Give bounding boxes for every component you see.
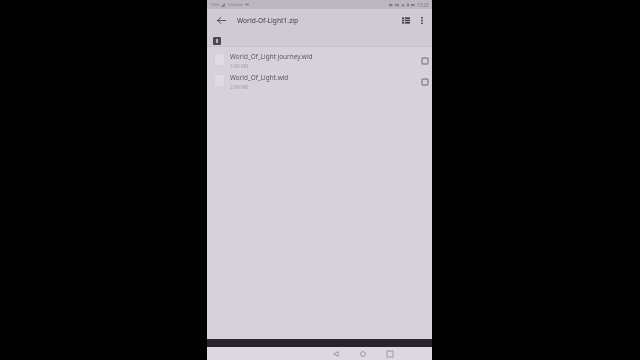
button[interactable]: More options <box>414 9 430 31</box>
staticText: World_Of_Light journey.wld <box>230 52 313 61</box>
staticText: World-Of-Light1.zip <box>237 16 397 25</box>
button[interactable]: Root folder <box>213 37 221 45</box>
button[interactable]: Recent apps <box>377 347 402 360</box>
button[interactable]: Navigate up <box>211 9 232 31</box>
button[interactable]: World_Of_Light.wld <box>207 68 432 89</box>
staticText: World_Of_Light.wld <box>230 73 289 82</box>
button[interactable]: Change view <box>397 9 414 31</box>
button[interactable]: Back <box>323 347 348 360</box>
button[interactable]: World_Of_Light journey.wld <box>207 47 432 68</box>
staticText: 2,99 MB <box>230 84 249 89</box>
button[interactable]: Home <box>350 347 375 360</box>
button[interactable]: Select file <box>416 68 430 89</box>
staticText: T-Mo <box>210 2 220 7</box>
staticText: 2,99 MB <box>230 63 249 68</box>
staticText: T-Mobile <box>227 2 244 7</box>
button[interactable]: Select file <box>416 47 430 68</box>
staticText: 17:25 <box>417 2 429 8</box>
